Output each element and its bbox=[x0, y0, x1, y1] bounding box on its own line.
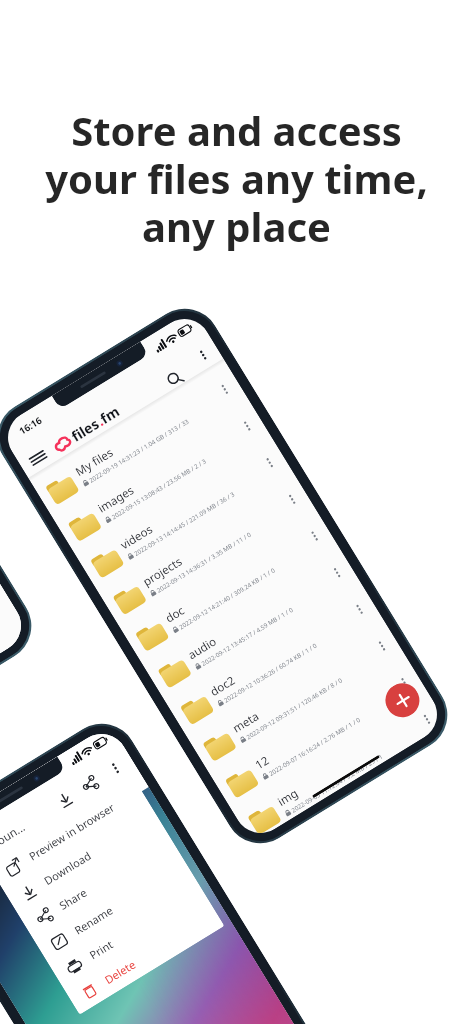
button[interactable]: More options bbox=[372, 636, 392, 656]
staticText: Share bbox=[56, 884, 90, 913]
staticText: groun... bbox=[0, 819, 29, 855]
button[interactable]: More options bbox=[417, 710, 437, 729]
staticText: images bbox=[95, 482, 137, 516]
button[interactable]: Share bbox=[18, 826, 179, 940]
staticText: My files bbox=[72, 444, 117, 480]
staticText: 2022-09-12 13:45:17 / 4.59 MB / 1 / 0 bbox=[200, 605, 294, 667]
button[interactable]: More options bbox=[260, 453, 279, 472]
button[interactable]: 12 bbox=[211, 657, 429, 813]
button[interactable]: img bbox=[234, 693, 447, 843]
staticText: 2022-09-13 14:14:45 / 221.09 MB / 36 / 3 bbox=[132, 489, 236, 557]
staticText: doc bbox=[162, 602, 188, 626]
button[interactable]: Preview in browser bbox=[0, 777, 148, 890]
staticText: 2022-09-15 13:08:43 / 23.56 MB / 2 / 3 bbox=[110, 456, 208, 520]
button[interactable]: Print bbox=[49, 876, 209, 989]
staticText: Rename bbox=[71, 902, 116, 938]
button[interactable]: More options bbox=[305, 526, 324, 546]
staticText: meta bbox=[230, 708, 262, 736]
button[interactable]: videos bbox=[76, 437, 294, 593]
staticText: doc2 bbox=[207, 672, 239, 700]
button[interactable]: Download bbox=[54, 789, 76, 811]
staticText: 2022-09-12 14:21:40 / 309.24 KB / 1 / 0 bbox=[177, 566, 276, 630]
button[interactable]: More options bbox=[350, 600, 369, 619]
button[interactable]: projects bbox=[99, 473, 316, 630]
button[interactable]: Rename bbox=[34, 851, 194, 964]
button[interactable]: Share bbox=[79, 773, 101, 795]
button[interactable]: More options bbox=[193, 345, 213, 365]
button[interactable]: Menu bbox=[26, 446, 51, 470]
staticText: 2022-09-13 14:36:31 / 3.35 MB / 11 / 0 bbox=[155, 529, 253, 594]
staticText: img bbox=[275, 785, 301, 810]
staticText: audio bbox=[185, 633, 220, 663]
button[interactable]: doc bbox=[121, 510, 339, 666]
staticText: 12 bbox=[252, 752, 273, 773]
staticText: fm bbox=[96, 401, 123, 428]
staticText: Print bbox=[86, 936, 116, 962]
staticText: 2022-09-19 14:31:23 / 1.04 GB / 313 / 33 bbox=[87, 416, 190, 484]
button[interactable]: More options bbox=[283, 490, 302, 509]
button[interactable]: images bbox=[54, 400, 271, 556]
button[interactable]: My files bbox=[31, 364, 249, 520]
button[interactable]: More options bbox=[105, 758, 126, 778]
staticText: 2022-09-12 09:31:51 / 120.46 KB / 8 / 0 bbox=[245, 676, 343, 740]
staticText: 2022-09-05 11:12:04 / 9.2 MB / 29 / 1 bbox=[290, 752, 384, 814]
staticText: projects bbox=[140, 553, 186, 590]
button[interactable]: Download bbox=[3, 801, 163, 915]
staticText: 16:16 bbox=[17, 413, 45, 438]
button[interactable]: audio bbox=[144, 547, 361, 703]
staticText: Download bbox=[41, 848, 94, 888]
button[interactable]: meta bbox=[189, 620, 406, 776]
staticText: 2022-09-12 10:36:26 / 60.74 KB / 1 / 0 bbox=[222, 641, 318, 704]
button[interactable]: Search bbox=[164, 368, 186, 390]
button[interactable]: More options bbox=[395, 673, 414, 692]
button[interactable]: More options bbox=[238, 416, 257, 436]
staticText: 2022-09-07 16:16:24 / 2.76 MB / 1 / 0 bbox=[267, 715, 362, 777]
staticText: Delete bbox=[102, 956, 138, 987]
staticText: videos bbox=[117, 521, 156, 553]
button[interactable]: Add bbox=[379, 677, 426, 724]
button[interactable]: doc2 bbox=[166, 583, 384, 740]
button[interactable]: Delete bbox=[64, 900, 224, 1014]
staticText: Store and access your files any time, an… bbox=[45, 103, 428, 253]
staticText: files bbox=[67, 414, 103, 446]
staticText: . bbox=[93, 412, 106, 430]
button[interactable]: More options bbox=[327, 563, 347, 582]
staticText: Preview in browser bbox=[26, 799, 117, 863]
button[interactable]: More options bbox=[215, 380, 234, 399]
